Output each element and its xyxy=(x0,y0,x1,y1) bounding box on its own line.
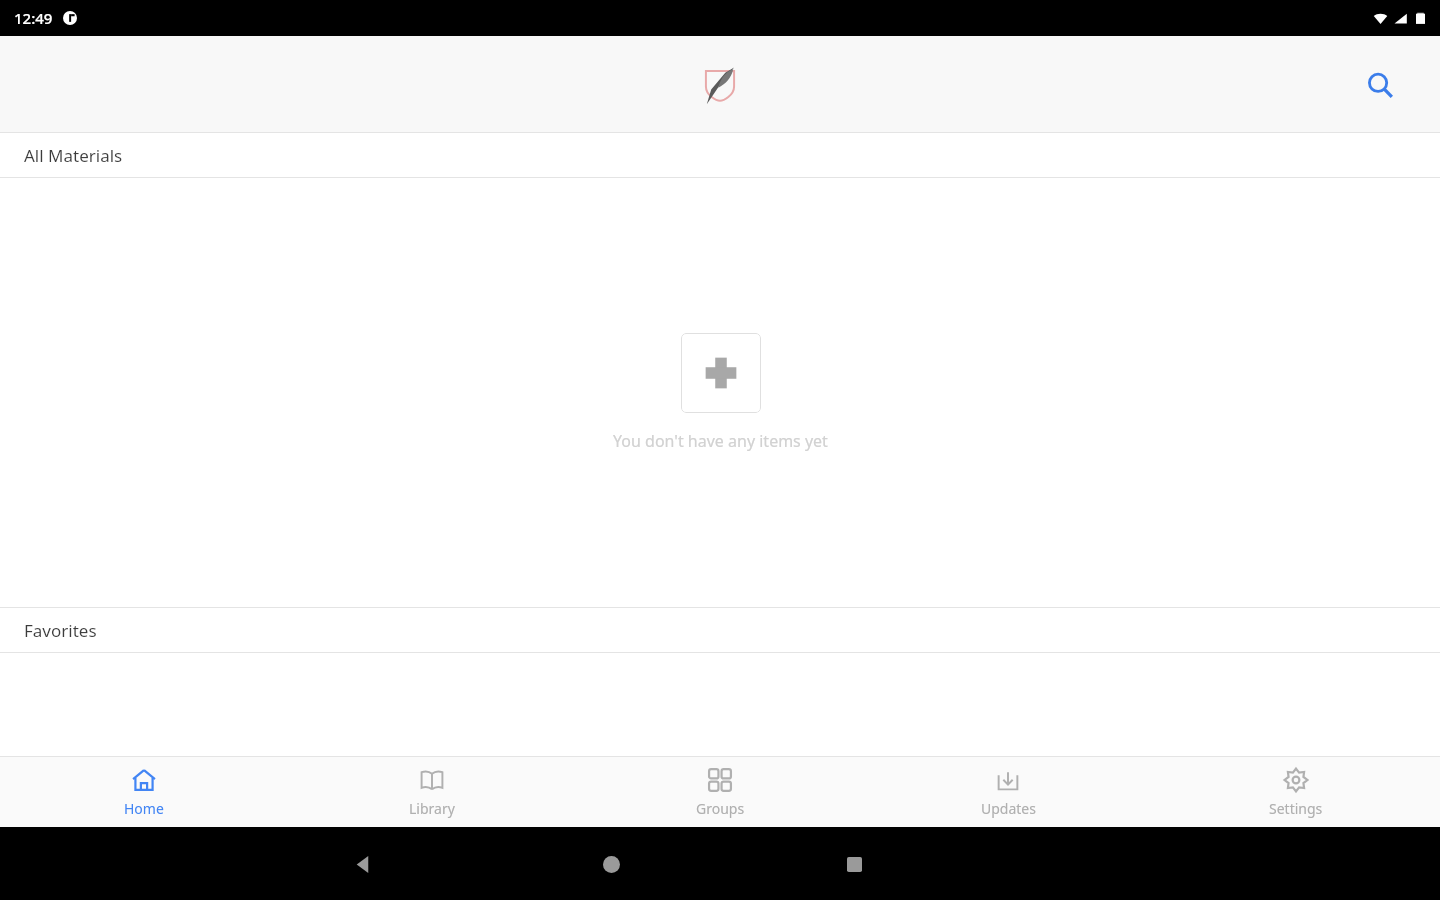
staticText: Favorites xyxy=(24,619,97,642)
button[interactable]: Groups xyxy=(576,761,864,824)
button[interactable]: Back xyxy=(346,847,380,881)
staticText: Updates xyxy=(981,799,1036,818)
button[interactable]: Home xyxy=(594,847,628,881)
staticText: 12:49 xyxy=(14,8,53,28)
staticText: Library xyxy=(409,799,455,818)
button[interactable]: Search xyxy=(1356,61,1404,109)
button[interactable]: Home xyxy=(0,761,288,824)
button[interactable]: Recent apps xyxy=(837,847,871,881)
button[interactable]: Updates xyxy=(864,761,1152,824)
staticText: Settings xyxy=(1269,799,1323,818)
staticText: Groups xyxy=(696,799,745,818)
button[interactable]: All Materials xyxy=(0,133,1440,177)
button[interactable]: Library xyxy=(288,761,576,824)
staticText: You don't have any items yet xyxy=(613,430,828,452)
button[interactable]: Settings xyxy=(1152,761,1440,824)
button[interactable]: Add item xyxy=(681,333,761,413)
staticText: Home xyxy=(124,799,164,818)
button[interactable]: Favorites xyxy=(0,608,1440,652)
staticText: All Materials xyxy=(24,144,123,167)
